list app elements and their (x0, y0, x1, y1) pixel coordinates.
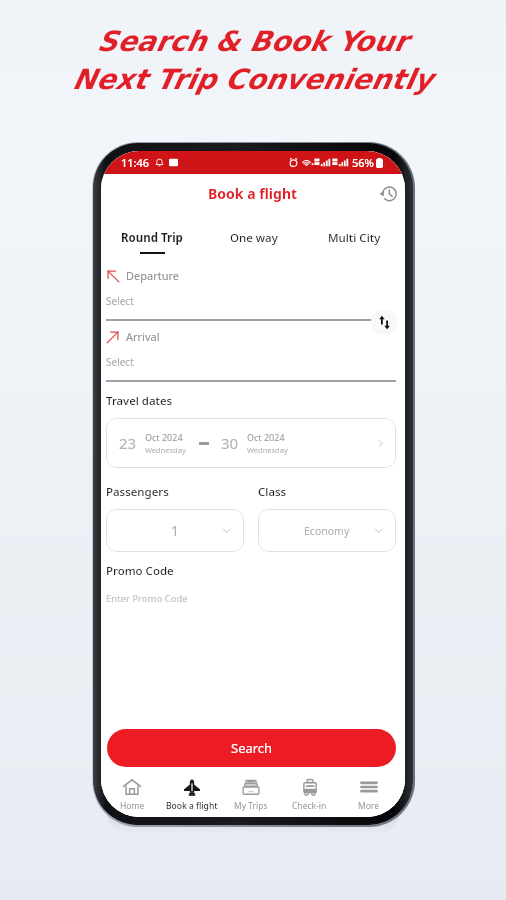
staticText: Economy (304, 524, 350, 538)
button[interactable]: Booking history (376, 181, 400, 205)
staticText: My Trips (234, 800, 268, 812)
staticText: Oct 2024 (145, 431, 183, 443)
staticText: Book a flight (208, 184, 298, 203)
staticText: Wednesday (145, 445, 186, 455)
button[interactable]: Swap departure and arrival (371, 309, 397, 335)
button[interactable]: Check-in (280, 772, 339, 817)
staticText: 23 (119, 433, 137, 453)
staticText: More (358, 800, 379, 812)
staticText: Passengers (106, 484, 169, 500)
staticText: Oct 2024 (247, 431, 285, 443)
staticText: Promo Code (106, 563, 174, 579)
button[interactable]: My Trips (221, 772, 280, 817)
staticText: Arrival (126, 329, 160, 344)
staticText: Travel dates (106, 393, 173, 409)
staticText: Wednesday (247, 445, 288, 455)
button[interactable]: Economy (258, 509, 396, 552)
button[interactable]: Multi City (304, 226, 405, 256)
button[interactable]: Round Trip (101, 226, 203, 258)
button[interactable]: Book a flight (162, 772, 221, 817)
staticText: Round Trip (121, 230, 183, 246)
staticText: Class (258, 484, 287, 500)
staticText: Select (106, 355, 134, 369)
button[interactable]: 1 (106, 509, 244, 552)
staticText: Search & Book Your Next Trip Convenientl… (0, 25, 506, 96)
staticText: Book a flight (166, 800, 218, 812)
staticText: Enter Promo Code (106, 592, 188, 605)
staticText: 1 (171, 521, 180, 540)
button[interactable]: One way (203, 226, 304, 256)
staticText: 11:46 (121, 155, 150, 170)
staticText: Search (231, 739, 273, 757)
button[interactable]: Home (102, 772, 162, 817)
staticText: Home (120, 800, 145, 812)
staticText: Select (106, 294, 134, 308)
staticText: One way (230, 230, 278, 246)
staticText: Check-in (292, 800, 327, 812)
button[interactable]: 23 (106, 418, 396, 468)
button[interactable]: Search (107, 729, 396, 767)
button[interactable]: More (339, 772, 398, 817)
staticText: Departure (126, 268, 180, 283)
staticText: Multi City (328, 230, 381, 246)
staticText: 30 (221, 433, 239, 453)
staticText: 56% (352, 155, 374, 170)
